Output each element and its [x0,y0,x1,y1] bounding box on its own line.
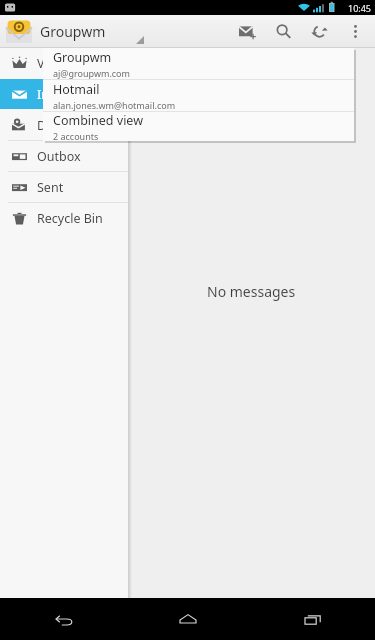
button[interactable]: Home [125,598,250,640]
button[interactable]: More options [337,15,373,48]
button[interactable]: Groupwm [0,15,146,48]
staticText: Outbox [37,148,81,165]
button[interactable]: Combined view [43,112,354,141]
button[interactable]: Hotmail [43,80,354,111]
staticText: Hotmail [53,81,100,98]
staticText: Drafts [37,117,73,134]
button[interactable]: Inbox [0,79,128,109]
button[interactable]: Sent [0,172,128,202]
staticText: Groupwm [40,22,106,41]
staticText: aj@groupwm.com [53,67,130,79]
button[interactable]: Recent apps [250,598,375,640]
button[interactable]: Refresh [301,15,337,48]
staticText: Inbox [37,86,71,103]
button[interactable]: Search [265,15,301,48]
staticText: 2 accounts [53,130,99,141]
staticText: Combined view [53,112,143,129]
staticText: Groupwm [53,49,112,66]
staticText: VIP [37,55,57,72]
staticText: No messages [207,282,296,301]
staticText: 10:45 [348,2,372,14]
button[interactable]: Outbox [0,141,128,171]
button[interactable]: New message [229,15,265,48]
button[interactable]: VIP [0,48,128,78]
staticText: Sent [37,179,64,196]
button[interactable]: Recycle Bin [0,203,128,233]
button[interactable]: Drafts [0,110,128,140]
staticText: alan.jones.wm@hotmail.com [53,99,176,111]
button[interactable]: Groupwm [43,48,354,79]
staticText: Recycle Bin [37,210,103,227]
button[interactable]: Back [0,598,125,640]
